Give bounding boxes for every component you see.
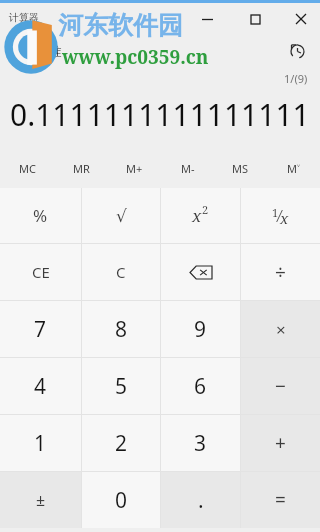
- button[interactable]: Close: [287, 5, 315, 33]
- button[interactable]: 0: [82, 472, 160, 528]
- staticText: x: [192, 204, 202, 227]
- button[interactable]: 7: [0, 301, 81, 357]
- button[interactable]: 8: [82, 301, 160, 357]
- button[interactable]: 9: [161, 301, 240, 357]
- staticText: −: [275, 373, 286, 399]
- staticText: x: [280, 208, 289, 228]
- staticText: M+: [126, 161, 143, 176]
- button[interactable]: −: [241, 358, 320, 414]
- button[interactable]: C: [82, 244, 160, 300]
- staticText: √: [116, 206, 127, 226]
- button[interactable]: +: [241, 415, 320, 471]
- staticText: ÷: [275, 259, 286, 285]
- staticText: www.pc0359.cn: [62, 44, 209, 70]
- staticText: 2: [202, 202, 209, 217]
- button[interactable]: 1: [0, 415, 81, 471]
- staticText: 4: [34, 372, 47, 401]
- staticText: ⁄: [279, 205, 280, 227]
- button[interactable]: =: [241, 472, 320, 528]
- staticText: 0.1111111111111111: [10, 94, 310, 135]
- staticText: MC: [19, 161, 36, 176]
- staticText: %: [33, 204, 48, 227]
- staticText: 9: [194, 315, 207, 344]
- button[interactable]: one divided by x: [241, 188, 320, 243]
- button[interactable]: CE: [0, 244, 81, 300]
- staticText: 河东软件园: [58, 10, 183, 41]
- staticText: 8: [115, 315, 128, 344]
- staticText: C: [116, 262, 126, 282]
- button[interactable]: 3: [161, 415, 240, 471]
- staticText: 计算器: [9, 11, 39, 24]
- button[interactable]: ±: [0, 472, 81, 528]
- staticText: 7: [34, 315, 47, 344]
- staticText: 3: [194, 429, 207, 458]
- staticText: 1: [34, 429, 47, 458]
- button[interactable]: M+: [108, 156, 161, 180]
- button[interactable]: 5: [82, 358, 160, 414]
- button[interactable]: M˅: [267, 156, 320, 180]
- staticText: 标准: [36, 43, 62, 59]
- staticText: 1: [272, 205, 279, 220]
- button[interactable]: ×: [241, 301, 320, 357]
- staticText: M˅: [287, 161, 301, 176]
- staticText: 6: [194, 372, 207, 401]
- staticText: +: [275, 430, 286, 456]
- button[interactable]: Maximize: [241, 5, 269, 33]
- button[interactable]: .: [161, 472, 240, 528]
- button[interactable]: MS: [214, 156, 267, 180]
- staticText: MS: [232, 161, 249, 176]
- staticText: ±: [36, 489, 46, 511]
- staticText: 5: [115, 372, 128, 401]
- staticText: 0: [115, 486, 128, 515]
- staticText: 2: [115, 429, 128, 458]
- button[interactable]: √: [82, 188, 160, 243]
- button[interactable]: ÷: [241, 244, 320, 300]
- button[interactable]: 6: [161, 358, 240, 414]
- staticText: ×: [276, 318, 286, 341]
- staticText: .: [198, 486, 204, 515]
- button[interactable]: Minimize: [193, 5, 221, 33]
- button[interactable]: Backspace: [161, 244, 240, 300]
- staticText: 1/(9): [284, 71, 308, 86]
- staticText: M-: [181, 161, 195, 176]
- staticText: =: [275, 487, 286, 513]
- staticText: MR: [73, 161, 90, 176]
- button[interactable]: MR: [54, 156, 108, 180]
- button[interactable]: Menu: [4, 37, 32, 65]
- button[interactable]: 4: [0, 358, 81, 414]
- button[interactable]: M-: [161, 156, 214, 180]
- button[interactable]: MC: [0, 156, 54, 180]
- button[interactable]: %: [0, 188, 81, 243]
- button[interactable]: x squared: [161, 188, 240, 243]
- staticText: CE: [32, 262, 50, 282]
- button[interactable]: 2: [82, 415, 160, 471]
- button[interactable]: History: [283, 37, 311, 65]
